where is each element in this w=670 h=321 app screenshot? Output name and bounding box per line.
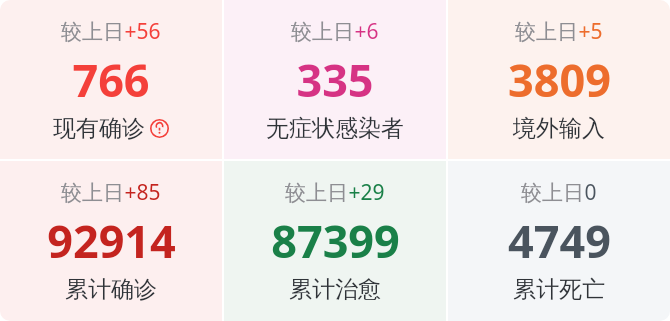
staticText: 较上日 [521,180,584,206]
staticText: 4749 [508,210,611,271]
staticText: 较上日 [291,19,354,45]
staticText: 较上日 [61,180,124,206]
staticText: 0 [584,178,597,207]
staticText: 现有确诊 [53,114,145,143]
staticText: 87399 [271,210,400,271]
staticText: 累计死亡 [513,275,605,304]
staticText: 较上日 [285,180,348,206]
staticText: 766 [72,49,150,110]
staticText: 335 [296,49,374,110]
staticText: +85 [124,178,161,207]
button[interactable]: 较上日 [224,161,446,321]
button[interactable]: 较上日 [448,161,670,321]
button[interactable]: 较上日 [0,0,222,159]
staticText: 境外输入 [513,114,605,143]
staticText: 较上日 [515,19,578,45]
staticText: 无症状感染者 [266,114,404,143]
staticText: +29 [348,178,385,207]
staticText: +5 [578,17,603,46]
staticText: +56 [124,17,161,46]
staticText: 3809 [508,49,611,110]
staticText: +6 [354,17,379,46]
staticText: 累计确诊 [65,275,157,304]
staticText: 较上日 [61,19,124,45]
button[interactable]: 较上日 [448,0,670,159]
staticText: 92914 [47,210,176,271]
staticText: 累计治愈 [289,275,381,304]
button[interactable]: 较上日 [224,0,446,159]
button[interactable]: 说明 [150,119,169,138]
button[interactable]: 较上日 [0,161,222,321]
